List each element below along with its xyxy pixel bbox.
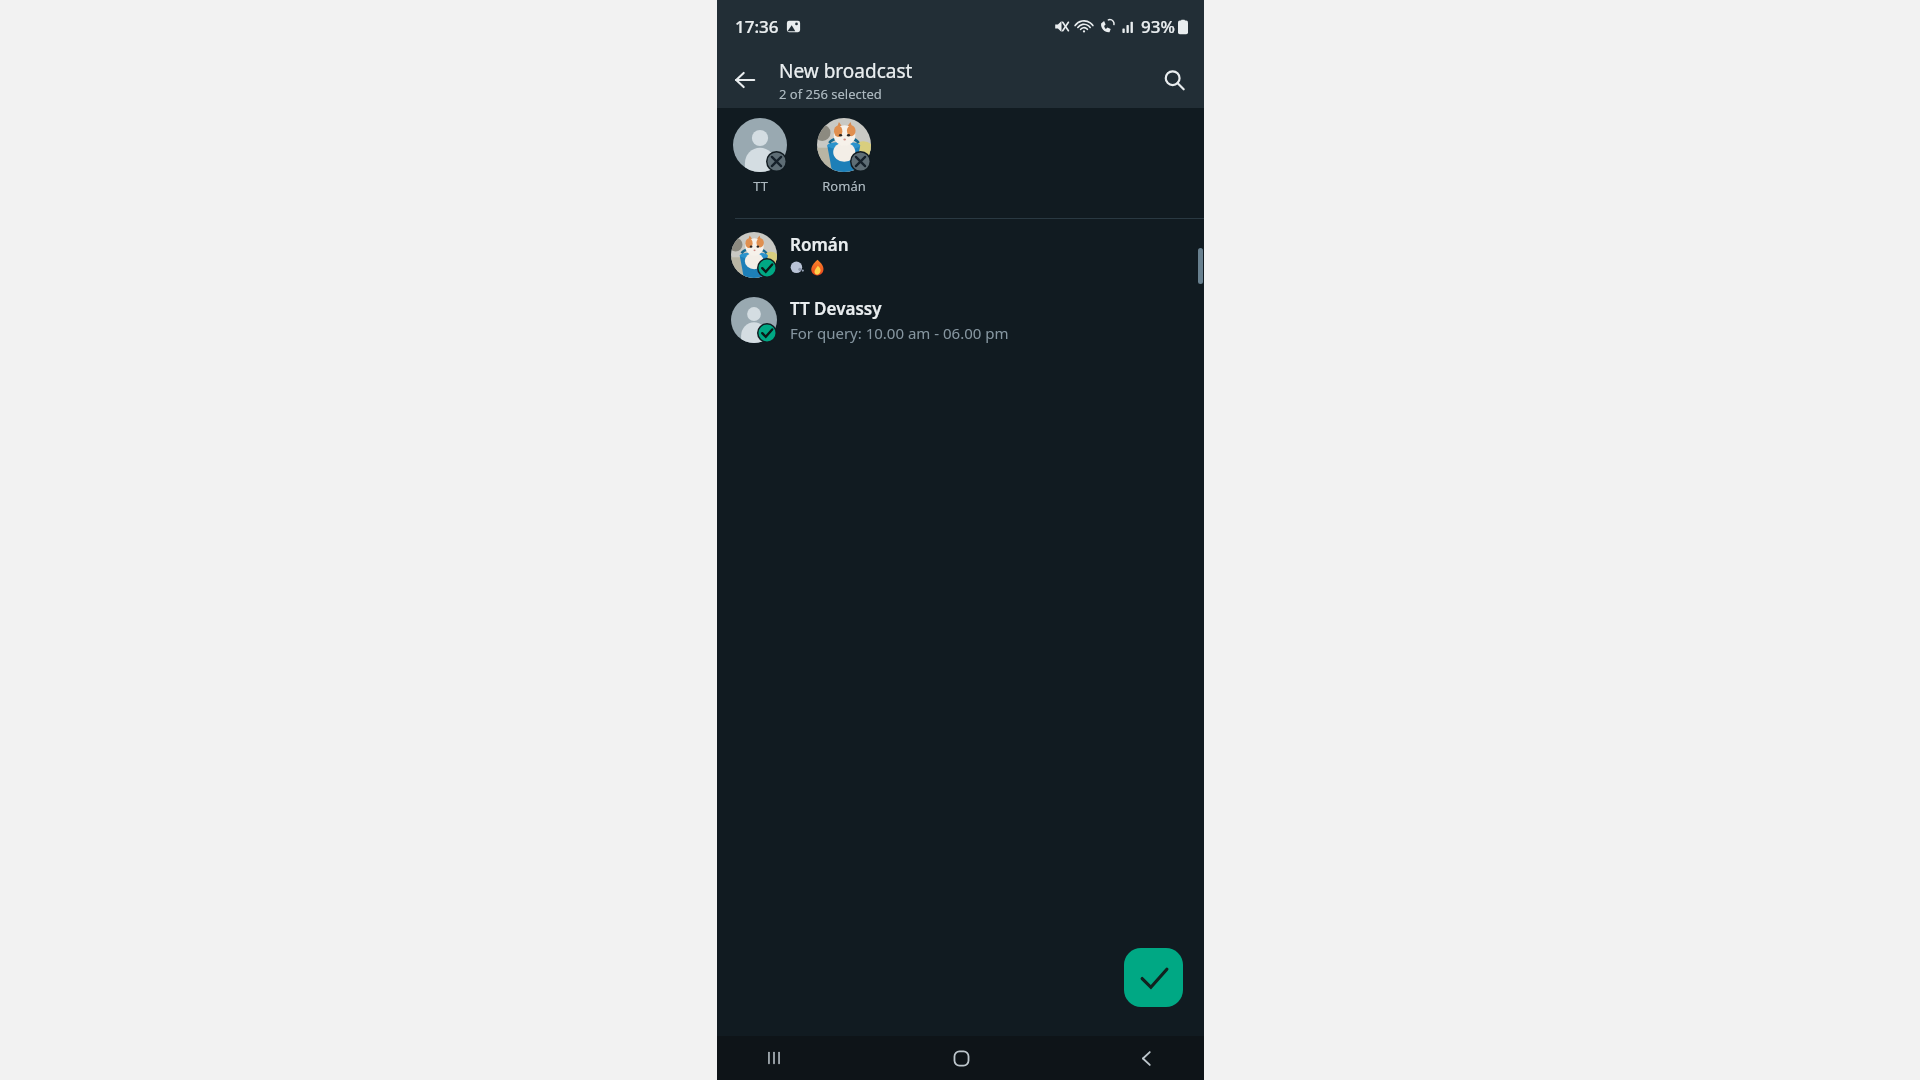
button[interactable]: Search [1152, 58, 1196, 102]
button[interactable]: Back [723, 58, 767, 102]
button[interactable]: TT [727, 118, 793, 195]
staticText: 17:36 [735, 15, 779, 38]
button[interactable]: Román [811, 118, 877, 195]
button[interactable]: Román [717, 222, 1204, 287]
button[interactable]: TT Devassy [717, 287, 1204, 352]
staticText: TT Devassy [790, 297, 882, 320]
staticText: TT [753, 177, 768, 195]
button[interactable]: Home [938, 1036, 984, 1080]
button[interactable]: Create broadcast [1124, 948, 1183, 1007]
staticText: 2 of 256 selected [779, 85, 882, 103]
staticText: Román [790, 233, 849, 256]
staticText: New broadcast [779, 58, 913, 84]
staticText: Román [822, 177, 866, 195]
button[interactable]: Recent apps [751, 1036, 797, 1080]
staticText: For query: 10.00 am - 06.00 pm [790, 323, 1009, 343]
button[interactable]: Back [1124, 1036, 1170, 1080]
staticText: 93% [1141, 15, 1175, 38]
